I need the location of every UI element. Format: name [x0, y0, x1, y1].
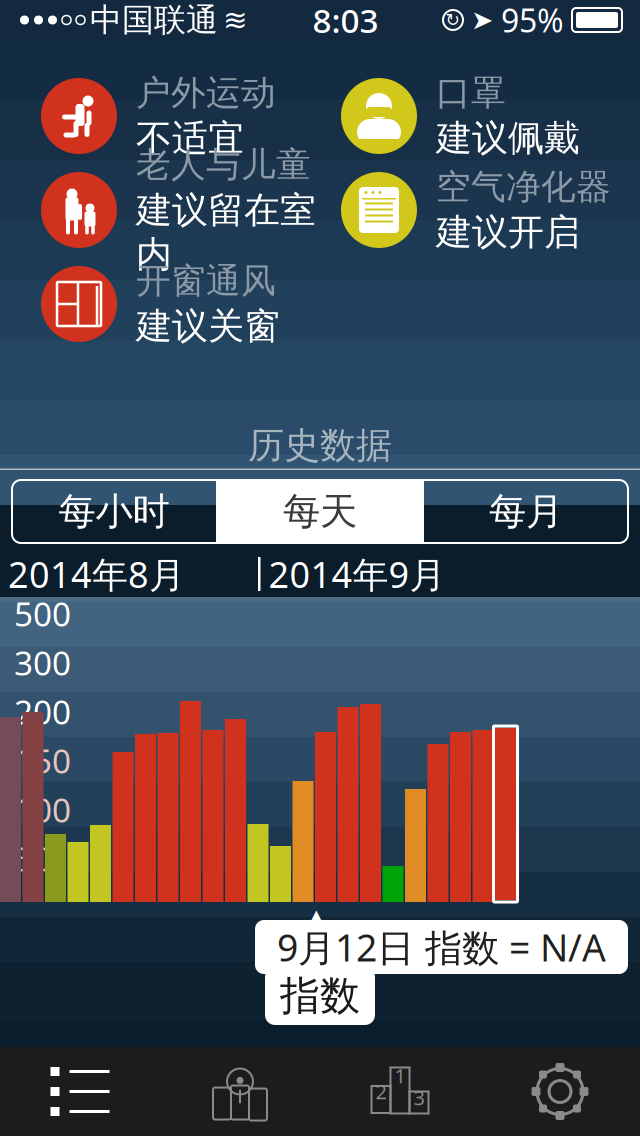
button[interactable]: 排行 [320, 1047, 480, 1136]
button[interactable]: 空气净化器 [341, 163, 640, 257]
button[interactable]: 开窗通风 [41, 257, 341, 351]
staticText: 空气净化器 [436, 166, 611, 208]
button[interactable]: 每小时 [12, 480, 628, 543]
staticText: 每小时 [58, 489, 169, 534]
staticText: 不适宜 [136, 116, 244, 160]
staticText: 2014年8月 [8, 550, 185, 598]
staticText: 500 [14, 591, 71, 636]
staticText: 建议佩戴 [436, 116, 580, 160]
staticText: 户外运动 [136, 72, 276, 114]
staticText: 每月 [489, 489, 563, 534]
staticText: 100 [14, 787, 71, 832]
staticText: 2 [375, 1078, 386, 1105]
button[interactable]: 指数 [265, 967, 375, 1025]
staticText: 8:03 [312, 0, 378, 42]
staticText: 200 [14, 689, 71, 734]
button[interactable]: 户外运动 [41, 69, 341, 163]
button[interactable]: 老人与儿童 [41, 163, 341, 257]
staticText: 中国联通 [90, 0, 218, 40]
staticText: ➤ [471, 5, 493, 35]
staticText: ▲ [305, 902, 328, 936]
staticText: 50 [14, 836, 52, 881]
staticText: 口罩 [436, 72, 506, 114]
button[interactable]: 地图 [160, 1047, 320, 1136]
staticText: 2014年9月 [268, 550, 445, 598]
staticText: 每天 [283, 489, 357, 534]
staticText: 历史数据 [248, 423, 392, 468]
button[interactable]: 列表 [0, 1047, 160, 1136]
button[interactable]: 设置 [480, 1047, 640, 1136]
staticText: ≋ [223, 3, 248, 37]
staticText: 95% [501, 0, 564, 41]
staticText: 150 [14, 738, 71, 783]
button[interactable]: 口罩 [341, 69, 640, 163]
staticText: ↻ [445, 10, 460, 30]
staticText: 3 [413, 1084, 424, 1111]
staticText: 1 [394, 1062, 405, 1089]
staticText: 开窗通风 [136, 260, 276, 302]
staticText: 9月12日 指数 = N/A [277, 922, 606, 972]
staticText: 老人与儿童 [136, 143, 311, 186]
staticText: 指数 [280, 971, 360, 1020]
staticText: 300 [14, 640, 71, 685]
staticText: 建议留在室内 [136, 188, 316, 276]
staticText: 建议开启 [436, 210, 580, 254]
staticText: 建议关窗 [136, 304, 280, 348]
